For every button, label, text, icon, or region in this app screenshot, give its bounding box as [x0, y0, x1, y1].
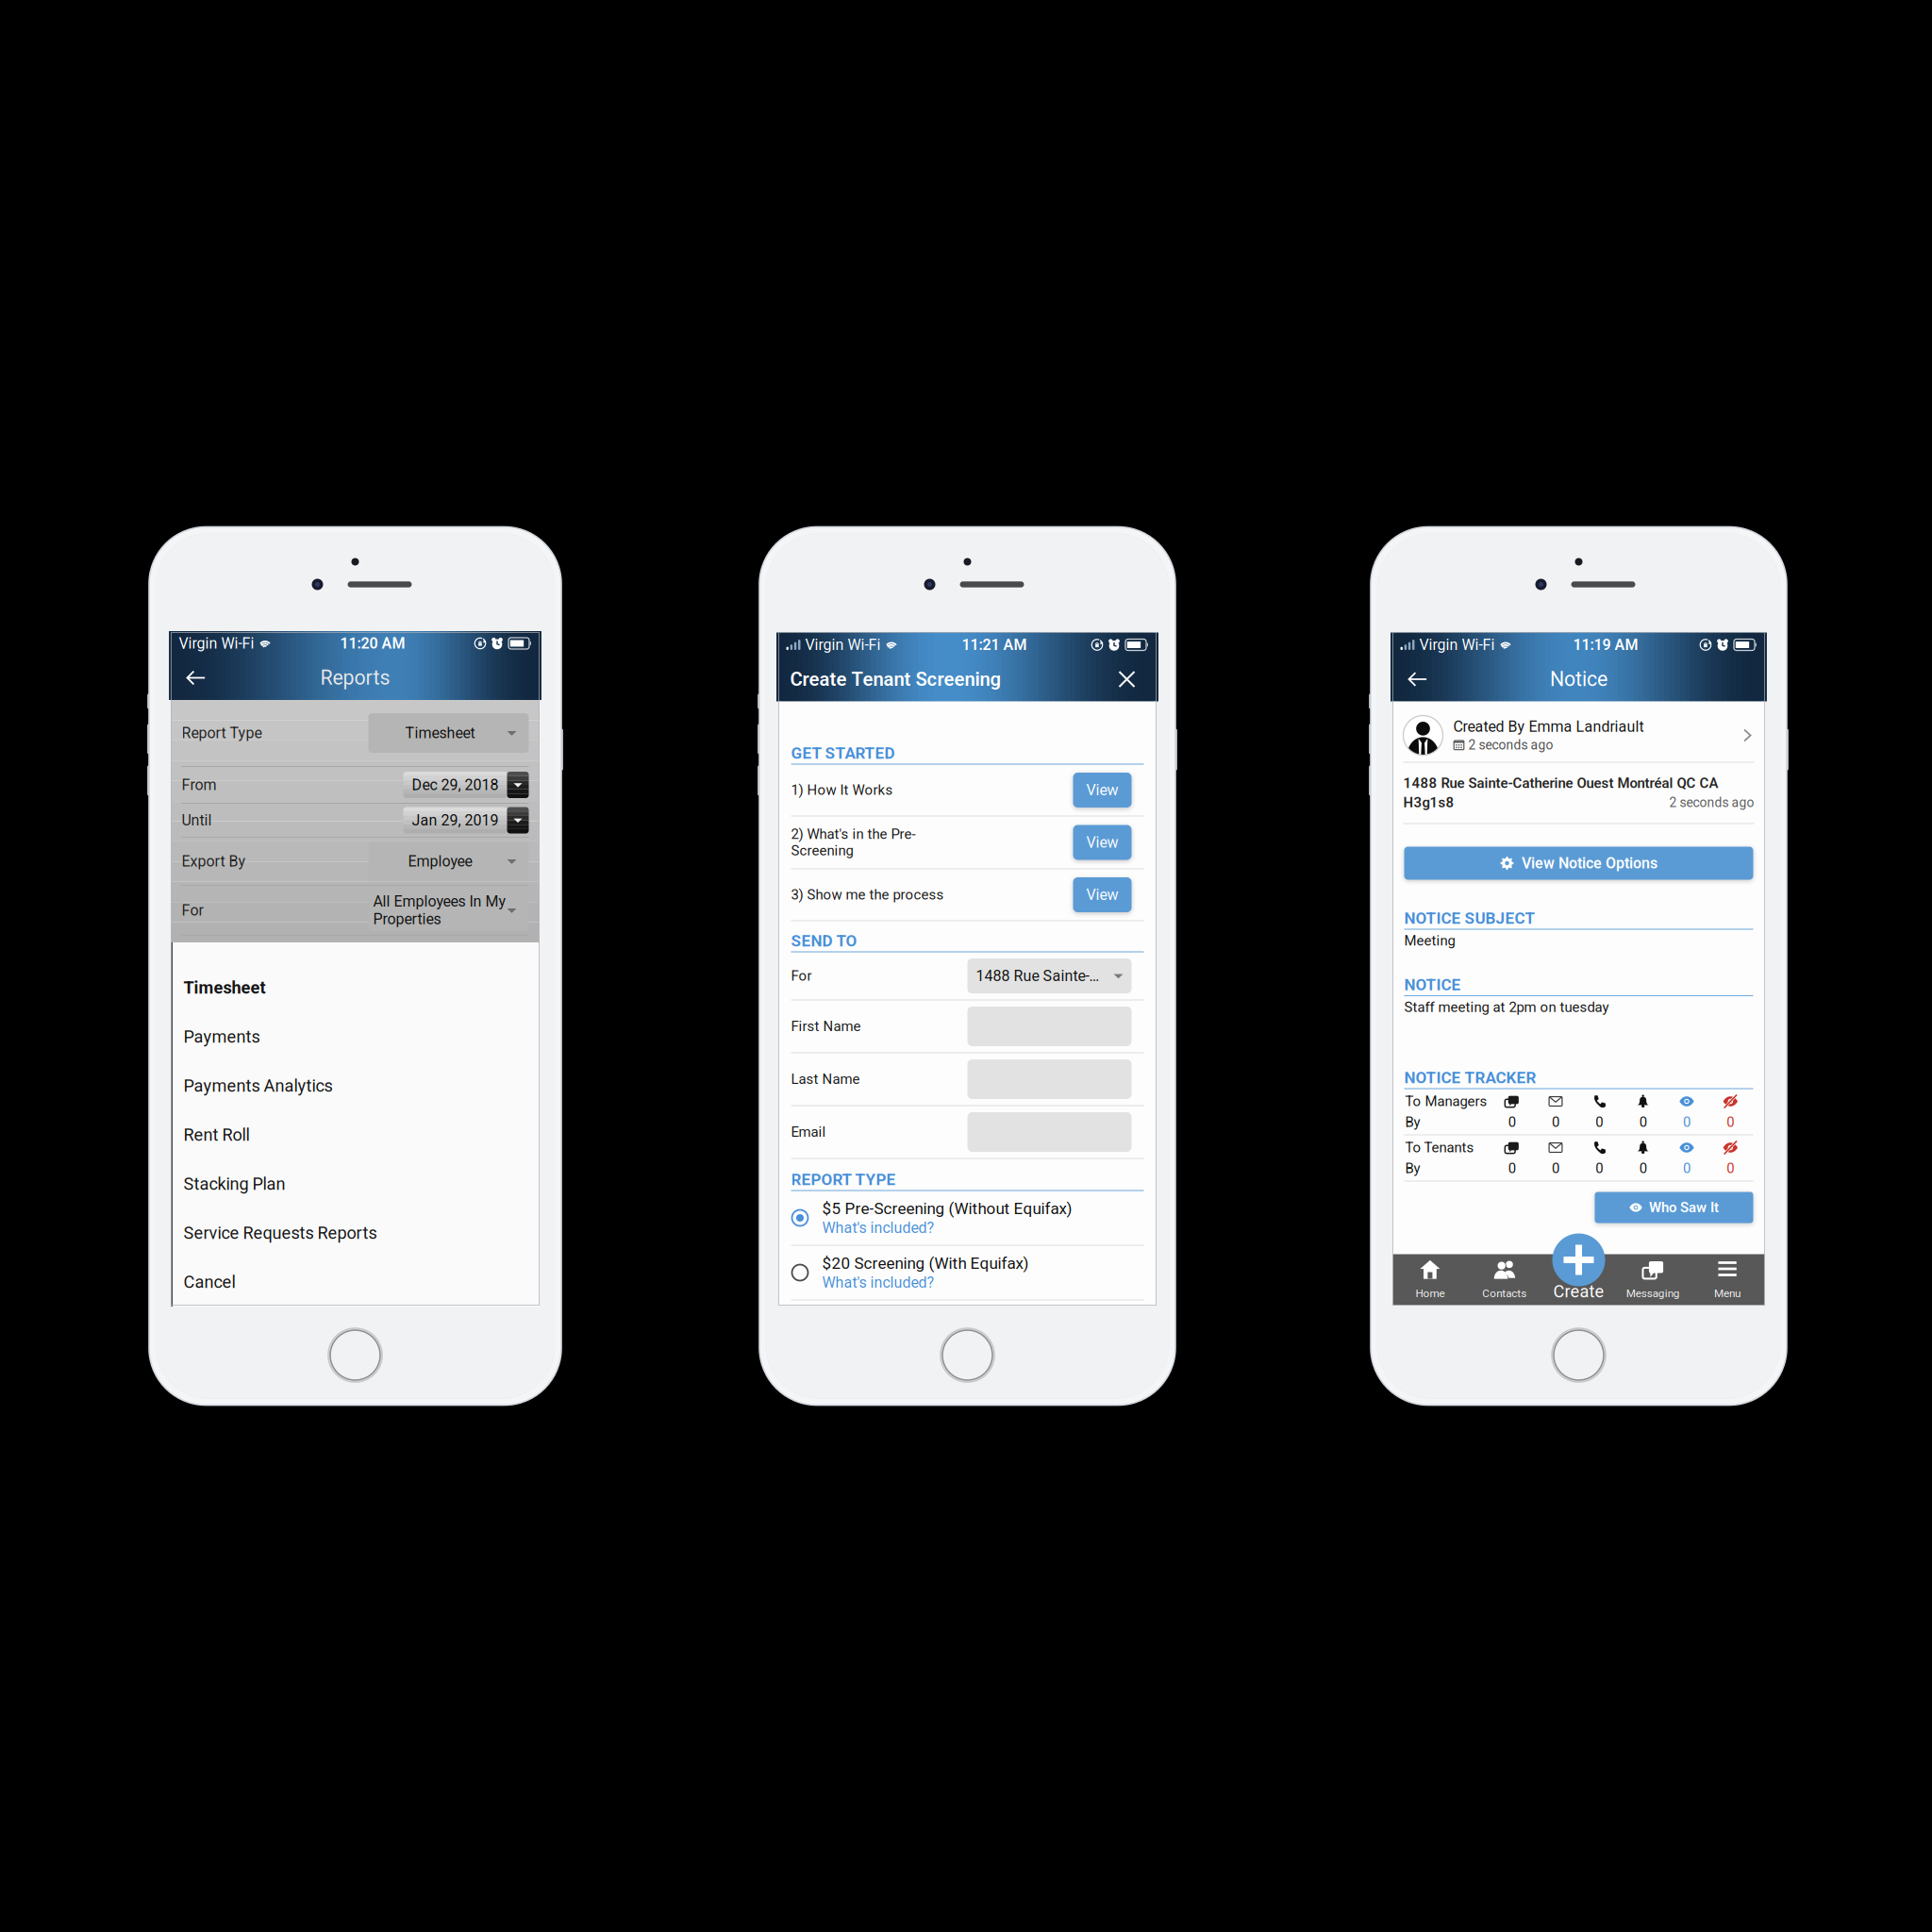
- button[interactable]: Who Saw It: [1595, 1192, 1753, 1223]
- button[interactable]: Payments: [171, 1012, 539, 1061]
- staticText: Email: [791, 1124, 826, 1140]
- button[interactable]: Contacts: [1467, 1254, 1542, 1305]
- staticText: For: [791, 968, 812, 984]
- staticText: All Employees In My Properties: [373, 893, 506, 928]
- staticText: Virgin Wi-Fi: [179, 635, 254, 652]
- staticText: 0: [1508, 1114, 1516, 1130]
- staticText: Dec 29, 2018: [412, 776, 499, 794]
- staticText: Export By: [182, 852, 246, 870]
- staticText: 2) What's in the Pre-Screening: [791, 826, 916, 859]
- button[interactable]: $20 Screening (With Equifax): [779, 1246, 1156, 1299]
- staticText: Contacts: [1482, 1287, 1527, 1300]
- button[interactable]: Stacking Plan: [171, 1159, 539, 1208]
- staticText: To Tenants: [1405, 1139, 1474, 1156]
- staticText: 11:20 AM: [340, 635, 405, 652]
- staticText: View: [1086, 781, 1118, 799]
- staticText: By: [1405, 1160, 1420, 1177]
- staticText: Report Type: [182, 724, 262, 742]
- staticText: What's included?: [822, 1219, 934, 1237]
- staticText: 0: [1596, 1114, 1603, 1130]
- staticText: First Name: [791, 1018, 861, 1035]
- staticText: What's included?: [822, 1274, 934, 1291]
- staticText: Until: [182, 811, 212, 829]
- staticText: 1488 Rue Sainte-Catherine Ouest Montréal…: [1403, 775, 1718, 791]
- staticText: Payments: [183, 1027, 260, 1047]
- staticText: Stacking Plan: [183, 1174, 285, 1194]
- staticText: Timesheet: [405, 724, 475, 742]
- staticText: Timesheet: [183, 978, 266, 998]
- staticText: 0: [1727, 1160, 1734, 1177]
- button[interactable]: Close: [1109, 661, 1145, 697]
- staticText: SEND TO: [791, 932, 857, 950]
- staticText: 0: [1727, 1114, 1734, 1130]
- staticText: Create: [1553, 1281, 1604, 1301]
- staticText: Cancel: [183, 1272, 235, 1292]
- staticText: Created By Emma Landriault: [1453, 718, 1644, 736]
- staticText: From: [182, 776, 217, 794]
- button[interactable]: Menu: [1690, 1254, 1765, 1305]
- staticText: GET STARTED: [791, 744, 895, 763]
- staticText: Payments Analytics: [183, 1076, 333, 1096]
- staticText: Notice: [1550, 667, 1607, 691]
- staticText: 0: [1683, 1160, 1690, 1177]
- button[interactable]: Timesheet: [171, 963, 539, 1012]
- staticText: Virgin Wi-Fi: [805, 636, 881, 654]
- staticText: Service Requests Reports: [183, 1223, 377, 1243]
- staticText: To Managers: [1405, 1093, 1487, 1110]
- staticText: 3) Show me the process: [791, 887, 944, 903]
- staticText: 2 seconds ago: [1468, 737, 1553, 753]
- button[interactable]: Back: [175, 657, 217, 699]
- staticText: Last Name: [791, 1071, 860, 1087]
- staticText: Staff meeting at 2pm on tuesday: [1404, 999, 1609, 1016]
- staticText: 0: [1508, 1160, 1516, 1177]
- staticText: View: [1086, 834, 1118, 851]
- button[interactable]: View: [1073, 825, 1144, 860]
- staticText: Who Saw It: [1649, 1199, 1719, 1216]
- staticText: NOTICE SUBJECT: [1404, 909, 1535, 928]
- staticText: $5 Pre-Screening (Without Equifax): [822, 1199, 1072, 1218]
- staticText: Reports: [320, 666, 390, 690]
- staticText: 0: [1639, 1114, 1647, 1130]
- staticText: 0: [1552, 1160, 1559, 1177]
- staticText: Messaging: [1626, 1287, 1680, 1300]
- staticText: Employee: [408, 852, 472, 870]
- staticText: Virgin Wi-Fi: [1419, 636, 1495, 654]
- staticText: Meeting: [1404, 933, 1455, 949]
- staticText: 1) How It Works: [791, 782, 893, 798]
- staticText: By: [1405, 1114, 1420, 1130]
- button[interactable]: Create: [1542, 1233, 1616, 1305]
- button[interactable]: View: [1073, 877, 1144, 912]
- staticText: Menu: [1714, 1287, 1741, 1300]
- button[interactable]: Home: [1393, 1254, 1467, 1305]
- button[interactable]: Rent Roll: [171, 1110, 539, 1159]
- button[interactable]: Cancel: [171, 1257, 539, 1307]
- staticText: View: [1086, 886, 1118, 904]
- staticText: H3g1s8: [1403, 794, 1454, 811]
- staticText: $20 Screening (With Equifax): [822, 1254, 1029, 1273]
- button[interactable]: Payments Analytics: [171, 1061, 539, 1110]
- staticText: 11:21 AM: [962, 636, 1027, 654]
- button[interactable]: View Notice Options: [1404, 847, 1753, 880]
- staticText: 11:19 AM: [1573, 636, 1638, 654]
- button[interactable]: $5 Pre-Screening (Without Equifax): [779, 1191, 1156, 1245]
- staticText: 0: [1552, 1114, 1559, 1130]
- staticText: 2 seconds ago: [1669, 795, 1754, 810]
- staticText: For: [182, 901, 203, 919]
- button[interactable]: Service Requests Reports: [171, 1208, 539, 1257]
- button[interactable]: View: [1073, 773, 1144, 808]
- button[interactable]: Created By Emma Landriault: [1393, 709, 1765, 762]
- staticText: 0: [1683, 1114, 1690, 1130]
- staticText: 1488 Rue Sainte-C…: [976, 967, 1106, 985]
- staticText: 0: [1639, 1160, 1647, 1177]
- staticText: REPORT TYPE: [791, 1170, 896, 1189]
- staticText: Jan 29, 2019: [412, 811, 499, 829]
- staticText: Rent Roll: [183, 1125, 250, 1145]
- staticText: Home: [1415, 1287, 1445, 1300]
- staticText: 0: [1596, 1160, 1603, 1177]
- staticText: View Notice Options: [1522, 854, 1657, 872]
- staticText: NOTICE: [1404, 975, 1461, 994]
- staticText: Create Tenant Screening: [790, 668, 1001, 690]
- button[interactable]: Messaging: [1616, 1254, 1690, 1305]
- staticText: NOTICE TRACKER: [1404, 1068, 1536, 1087]
- button[interactable]: Back: [1397, 658, 1438, 700]
